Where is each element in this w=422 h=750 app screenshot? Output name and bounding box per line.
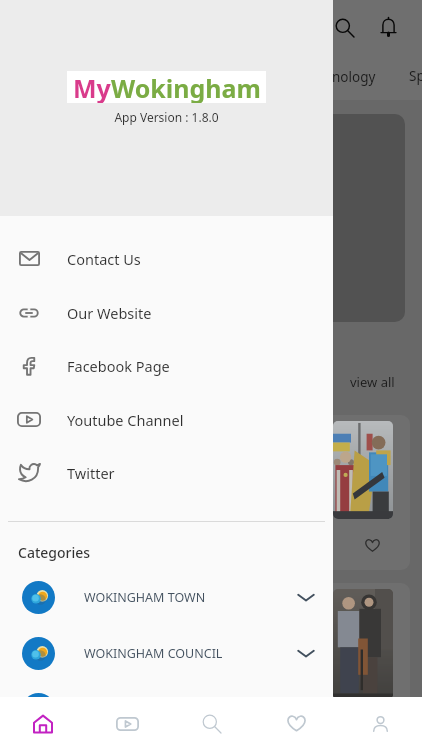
button[interactable]: Contact Us bbox=[0, 232, 333, 285]
button[interactable]: Twitter bbox=[0, 446, 333, 499]
button[interactable]: Search bbox=[170, 697, 254, 750]
staticText: Youtube Channel bbox=[67, 410, 184, 430]
button[interactable]: Our Website bbox=[0, 286, 333, 339]
staticText: Our Website bbox=[67, 303, 152, 323]
button[interactable]: Videos bbox=[85, 697, 170, 750]
button[interactable]: Favourite bbox=[365, 538, 380, 553]
staticText: Facebook Page bbox=[67, 356, 170, 376]
button[interactable] bbox=[235, 583, 410, 738]
button[interactable] bbox=[0, 691, 333, 727]
staticText: Categories bbox=[18, 543, 91, 562]
staticText: App Version : 1.8.0 bbox=[0, 109, 333, 125]
button[interactable]: Search bbox=[335, 18, 355, 38]
button[interactable] bbox=[247, 114, 405, 322]
button[interactable]: Home bbox=[0, 697, 85, 750]
button[interactable]: Favourites bbox=[254, 697, 338, 750]
staticText: Twitter bbox=[67, 463, 115, 483]
button[interactable]: Profile bbox=[338, 697, 422, 750]
button[interactable]: WOKINGHAM COUNCIL bbox=[0, 635, 333, 671]
button[interactable]: view all bbox=[350, 373, 395, 391]
button[interactable]: Facebook Page bbox=[0, 339, 333, 392]
button[interactable]: WOKINGHAM TOWN bbox=[0, 579, 333, 615]
button[interactable]: Notifications bbox=[380, 17, 397, 37]
button[interactable]: Favourite bbox=[235, 415, 410, 570]
button[interactable]: Youtube Channel bbox=[0, 393, 333, 446]
button[interactable]: Sports bbox=[409, 67, 422, 85]
staticText: Contact Us bbox=[67, 249, 141, 269]
staticText: WOKINGHAM COUNCIL bbox=[84, 645, 223, 662]
button[interactable]: Technology bbox=[303, 68, 376, 86]
staticText: WOKINGHAM TOWN bbox=[84, 589, 206, 606]
staticText: My bbox=[73, 71, 111, 103]
staticText: Wokingham bbox=[111, 71, 261, 103]
